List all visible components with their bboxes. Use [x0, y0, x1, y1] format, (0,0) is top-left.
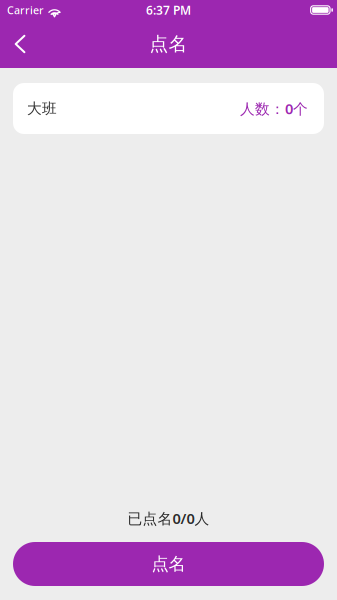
button[interactable]: Back — [0, 21, 40, 67]
button[interactable]: 点名 — [13, 542, 324, 586]
staticText: 已点名0/0人 — [127, 508, 209, 528]
staticText: Carrier — [7, 3, 44, 17]
button[interactable]: 大班 — [13, 83, 324, 134]
staticText: 6:37 PM — [146, 2, 191, 18]
staticText: 大班 — [27, 99, 57, 117]
staticText: 点名 — [151, 553, 185, 575]
staticText: 点名 — [149, 32, 187, 55]
staticText: 人数：0个 — [240, 99, 308, 118]
